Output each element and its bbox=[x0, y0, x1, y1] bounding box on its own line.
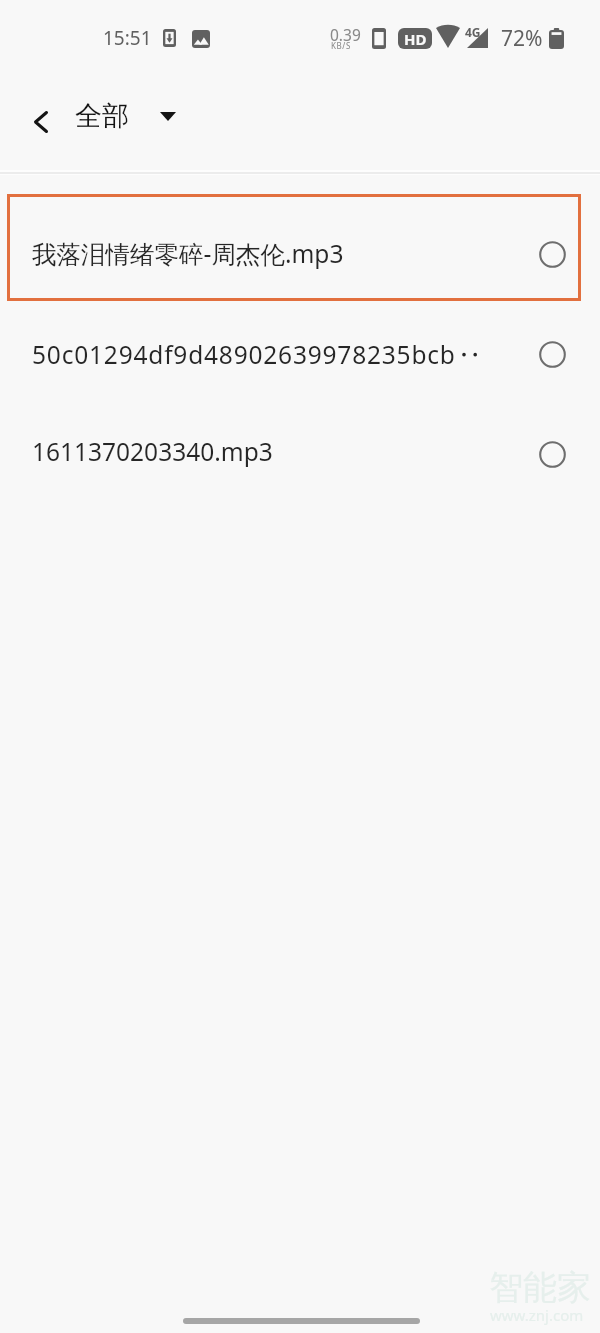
staticText: 1611370203340.mp3 bbox=[32, 435, 273, 468]
staticText: 全部 bbox=[75, 99, 129, 133]
staticText: 50c01294df9d48902639978235bcb bbox=[32, 338, 456, 371]
staticText: KB/S bbox=[331, 40, 351, 51]
button[interactable]: Back bbox=[19, 100, 63, 144]
staticText: www.znj.com bbox=[490, 1305, 584, 1325]
staticText: HD bbox=[404, 29, 427, 49]
staticText: 4G bbox=[465, 24, 481, 40]
staticText: 我落泪情绪零碎-周杰伦.mp3 bbox=[32, 237, 344, 270]
button[interactable]: Select 50c01294df9d48902639978235bcb bbox=[539, 341, 566, 368]
button[interactable]: Select 我落泪情绪零碎-周杰伦.mp3 bbox=[539, 241, 566, 268]
button[interactable]: 50c01294df9d48902639978235bcb bbox=[7, 294, 581, 394]
staticText: 15:51 bbox=[103, 25, 152, 51]
button[interactable]: 我落泪情绪零碎-周杰伦.mp3 bbox=[7, 194, 581, 301]
button[interactable]: 1611370203340.mp3 bbox=[7, 394, 581, 494]
button[interactable]: 全部 bbox=[75, 99, 129, 133]
staticText: 0.39 bbox=[330, 24, 361, 45]
staticText: 智能家 bbox=[489, 1266, 591, 1309]
button[interactable]: Select 1611370203340.mp3 bbox=[539, 441, 566, 468]
staticText: 72% bbox=[501, 24, 543, 53]
button[interactable]: Filter dropdown bbox=[152, 100, 184, 132]
